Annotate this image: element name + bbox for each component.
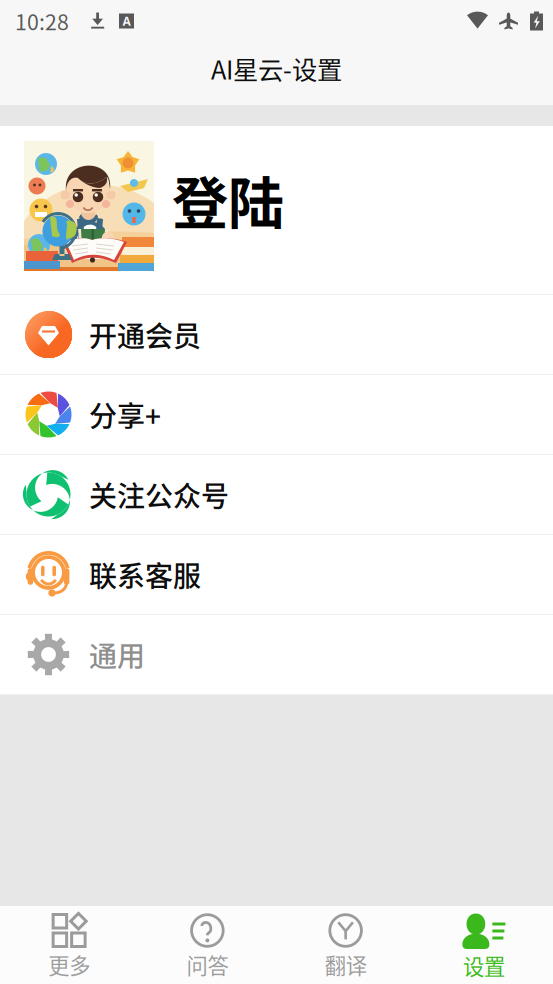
staticText: 问答 bbox=[186, 949, 228, 980]
staticText: AI星云-设置 bbox=[211, 50, 342, 87]
staticText: 登陆 bbox=[172, 158, 284, 240]
button[interactable]: 翻译 bbox=[276, 906, 415, 984]
staticText: A bbox=[122, 13, 130, 29]
staticText: 联系客服 bbox=[89, 554, 201, 595]
staticText: 关注公众号 bbox=[89, 474, 229, 515]
staticText: 翻译 bbox=[325, 949, 367, 980]
staticText: 通用 bbox=[89, 634, 145, 675]
staticText: 设置 bbox=[463, 950, 505, 981]
button[interactable]: 分享+ bbox=[0, 375, 553, 455]
button[interactable]: 问答 bbox=[138, 906, 276, 984]
staticText: 更多 bbox=[48, 949, 90, 980]
button[interactable]: 通用 bbox=[0, 615, 553, 695]
button[interactable]: 关注公众号 bbox=[0, 455, 553, 535]
button[interactable]: 登陆 bbox=[0, 126, 553, 295]
staticText: 开通会员 bbox=[89, 314, 201, 355]
staticText: 10:28 bbox=[15, 6, 69, 36]
button[interactable]: 设置 bbox=[415, 906, 553, 984]
button[interactable]: 联系客服 bbox=[0, 535, 553, 615]
button[interactable]: 开通会员 bbox=[0, 295, 553, 375]
button[interactable]: 更多 bbox=[0, 906, 138, 984]
staticText: 分享+ bbox=[89, 394, 161, 435]
